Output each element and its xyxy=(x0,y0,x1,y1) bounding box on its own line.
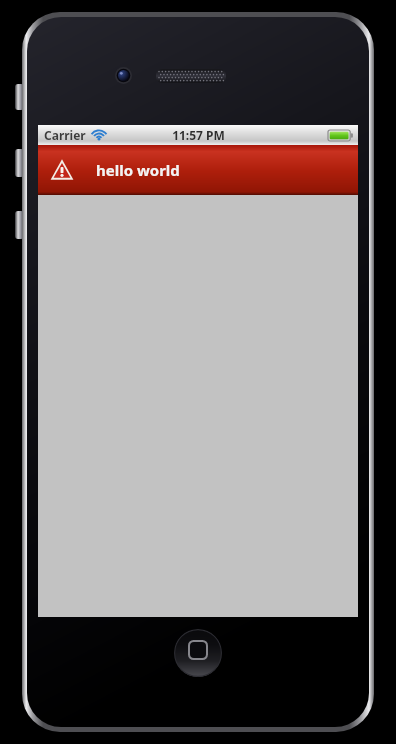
button[interactable]: Home xyxy=(174,629,222,677)
staticText: hello world xyxy=(96,160,180,180)
staticText: Carrier xyxy=(44,127,86,143)
other: Warning xyxy=(50,158,74,182)
button[interactable]: Warning xyxy=(38,145,358,195)
staticText: 11:57 PM xyxy=(172,127,225,143)
